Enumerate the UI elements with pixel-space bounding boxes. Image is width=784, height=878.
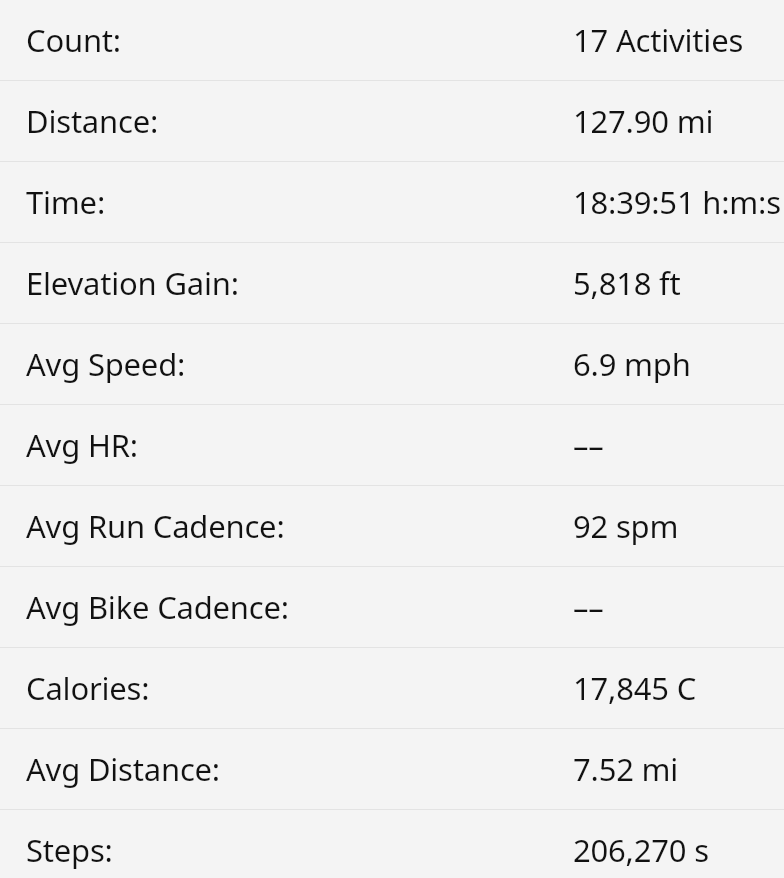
button[interactable]: Count: (0, 0, 784, 80)
staticText: 127.90 mi (573, 100, 714, 142)
button[interactable]: Elevation Gain: (0, 243, 784, 323)
staticText: 18:39:51 h:m:s (573, 181, 781, 223)
staticText: –– (573, 424, 604, 466)
staticText: 7.52 mi (573, 748, 679, 790)
staticText: Avg Run Cadence: (26, 505, 285, 547)
staticText: Elevation Gain: (26, 262, 239, 304)
staticText: Avg Speed: (26, 343, 186, 385)
staticText: –– (573, 586, 604, 628)
staticText: Avg Bike Cadence: (26, 586, 289, 628)
staticText: 17,845 C (573, 667, 697, 709)
staticText: Steps: (26, 829, 113, 871)
staticText: Avg HR: (26, 424, 138, 466)
staticText: Count: (26, 19, 121, 61)
button[interactable]: Avg Run Cadence: (0, 486, 784, 566)
staticText: 92 spm (573, 505, 679, 547)
button[interactable]: Avg HR: (0, 405, 784, 485)
staticText: 5,818 ft (573, 262, 681, 304)
button[interactable]: Distance: (0, 81, 784, 161)
button[interactable]: Steps: (0, 810, 784, 878)
staticText: 17 Activities (573, 19, 744, 61)
button[interactable]: Avg Bike Cadence: (0, 567, 784, 647)
button[interactable]: Avg Speed: (0, 324, 784, 404)
staticText: 6.9 mph (573, 343, 691, 385)
button[interactable]: Avg Distance: (0, 729, 784, 809)
staticText: Distance: (26, 100, 159, 142)
staticText: Time: (26, 181, 106, 223)
staticText: Calories: (26, 667, 150, 709)
button[interactable]: Calories: (0, 648, 784, 728)
staticText: Avg Distance: (26, 748, 220, 790)
staticText: 206,270 s (573, 829, 709, 871)
button[interactable]: Time: (0, 162, 784, 242)
